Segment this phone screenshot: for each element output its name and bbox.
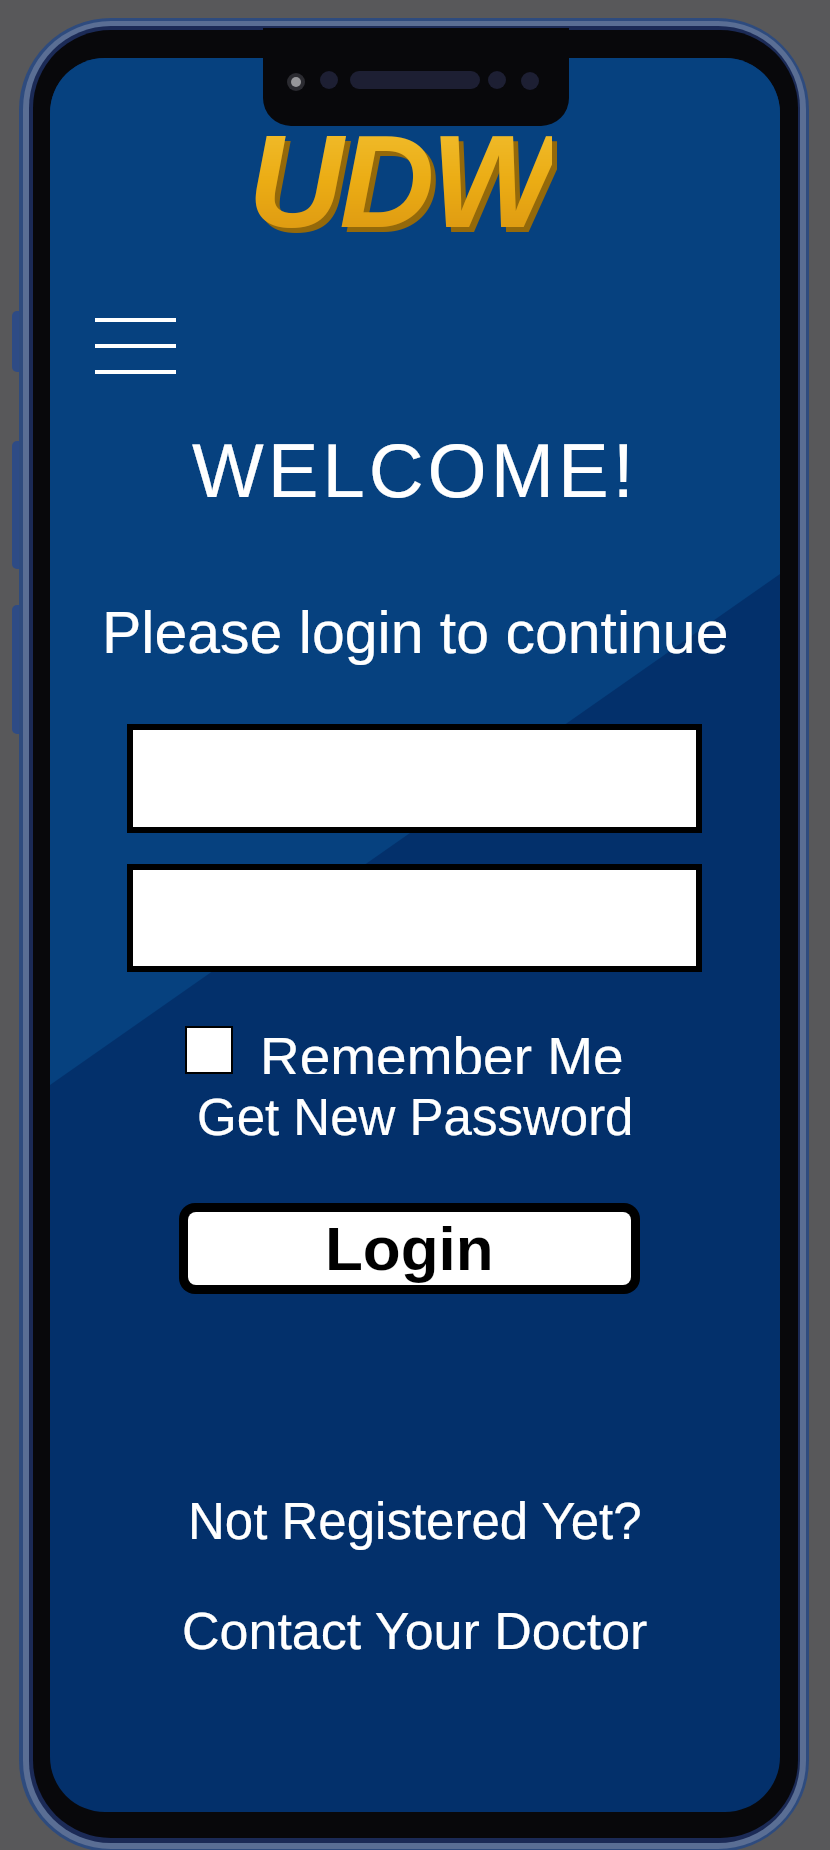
staticText: Contact Your Doctor [182, 1602, 648, 1660]
button[interactable] [127, 864, 702, 972]
staticText: Remember Me [260, 1026, 624, 1074]
button[interactable]: Not Registered Yet? [188, 1493, 642, 1550]
staticText: Get New Password [197, 1089, 634, 1146]
button[interactable] [127, 724, 702, 833]
staticText: Login [325, 1214, 494, 1283]
staticText: Please login to continue [102, 600, 729, 666]
button[interactable]: Contact Your Doctor [182, 1602, 648, 1660]
staticText: UDW [253, 113, 557, 253]
button[interactable]: Remember Me [185, 1026, 624, 1074]
button[interactable] [95, 318, 176, 374]
staticText: WELCOME! [192, 428, 638, 513]
button[interactable]: Login [179, 1203, 640, 1294]
staticText: Not Registered Yet? [188, 1493, 642, 1550]
button[interactable]: Get New Password [197, 1089, 634, 1146]
staticText: UDW [248, 108, 552, 248]
